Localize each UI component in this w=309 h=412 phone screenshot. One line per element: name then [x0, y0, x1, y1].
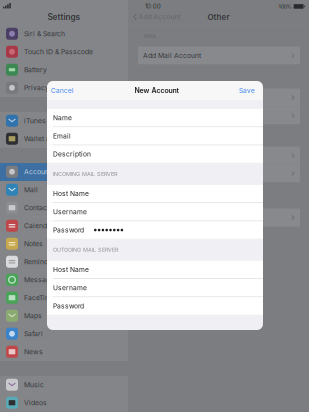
staticText: 100%	[279, 3, 292, 10]
button[interactable]: Music	[0, 376, 128, 394]
button[interactable]: Cancel	[47, 83, 74, 98]
staticText: Messages	[24, 276, 58, 284]
button[interactable]: Videos	[0, 394, 128, 412]
staticText: Password	[53, 226, 84, 234]
staticText: Username	[53, 208, 87, 216]
button[interactable]: Calendar	[0, 217, 128, 235]
staticText: Wallet & Apple Pay	[24, 135, 85, 143]
button[interactable]	[138, 164, 300, 182]
staticText: Description	[53, 150, 91, 158]
button[interactable]: Reminders	[0, 253, 128, 271]
button[interactable]: News	[0, 343, 128, 361]
button[interactable]: FaceTime	[0, 289, 128, 307]
button[interactable]: Maps	[0, 307, 128, 325]
button[interactable]: Host Name	[47, 185, 263, 202]
button[interactable]: Password	[47, 221, 263, 239]
button[interactable]: Password	[47, 297, 263, 315]
button[interactable]: Username	[47, 279, 263, 296]
staticText: Name	[53, 114, 72, 122]
staticText: Accounts & Passwords	[24, 168, 98, 176]
staticText: Save	[239, 86, 255, 95]
staticText: Email	[53, 132, 71, 140]
button[interactable]: Privacy	[0, 79, 128, 97]
staticText: Contacts	[24, 204, 53, 212]
staticText: MAIL	[144, 33, 157, 39]
button[interactable]: Add Account	[128, 12, 181, 22]
staticText: Calendar	[24, 222, 54, 230]
staticText: Safari	[24, 330, 43, 338]
button[interactable]: Contacts	[0, 199, 128, 217]
button[interactable]	[138, 146, 300, 164]
staticText: Notes	[24, 240, 43, 248]
button[interactable]: Mail	[0, 181, 128, 199]
staticText: Siri & Search	[24, 30, 65, 38]
staticText: Add Mail Account	[143, 51, 201, 60]
staticText: Mail	[24, 186, 38, 194]
staticText: INCOMING MAIL SERVER	[53, 171, 118, 177]
staticText: OUTGOING MAIL SERVER	[53, 246, 119, 253]
button[interactable]	[138, 106, 300, 124]
staticText: Maps	[24, 312, 42, 320]
staticText: Host Name	[53, 265, 89, 274]
button[interactable]	[138, 208, 300, 226]
staticText: Privacy	[24, 84, 49, 92]
button[interactable]: Siri & Search	[0, 25, 128, 43]
button[interactable]: Host Name	[47, 261, 263, 278]
button[interactable]: Safari	[0, 325, 128, 343]
button[interactable]: Username	[47, 203, 263, 221]
staticText: New Account	[134, 86, 178, 95]
staticText: News	[24, 348, 43, 356]
button[interactable]: Save	[239, 83, 263, 98]
button[interactable]: Description	[47, 145, 263, 163]
staticText: FaceTime	[24, 294, 55, 302]
button[interactable]: Notes	[0, 235, 128, 253]
staticText: iTunes & App Store	[24, 117, 85, 125]
staticText: Touch ID & Passcode	[24, 48, 93, 56]
staticText: Music	[24, 381, 44, 389]
staticText: Reminders	[24, 258, 59, 266]
staticText: Username	[53, 284, 87, 292]
staticText: Password	[53, 302, 84, 310]
button[interactable]: Wallet & Apple Pay	[0, 130, 128, 148]
staticText: Cancel	[51, 86, 74, 95]
button[interactable]	[138, 88, 300, 106]
staticText: Battery	[24, 66, 47, 74]
button[interactable]: Battery	[0, 61, 128, 79]
button[interactable]: Name	[47, 109, 263, 126]
button[interactable]: Email	[47, 127, 263, 145]
staticText: Other	[207, 12, 229, 22]
button[interactable]: Accounts & Passwords	[0, 163, 128, 181]
button[interactable]: Messages	[0, 271, 128, 289]
staticText: Videos	[24, 399, 47, 407]
staticText: Host Name	[53, 190, 89, 198]
staticText: Add Account	[139, 13, 181, 21]
button[interactable]: iTunes & App Store	[0, 112, 128, 130]
button[interactable]: Touch ID & Passcode	[0, 43, 128, 61]
staticText: 10:00	[145, 3, 161, 10]
staticText: Settings	[47, 12, 80, 22]
button[interactable]: Add Mail Account	[138, 46, 300, 64]
